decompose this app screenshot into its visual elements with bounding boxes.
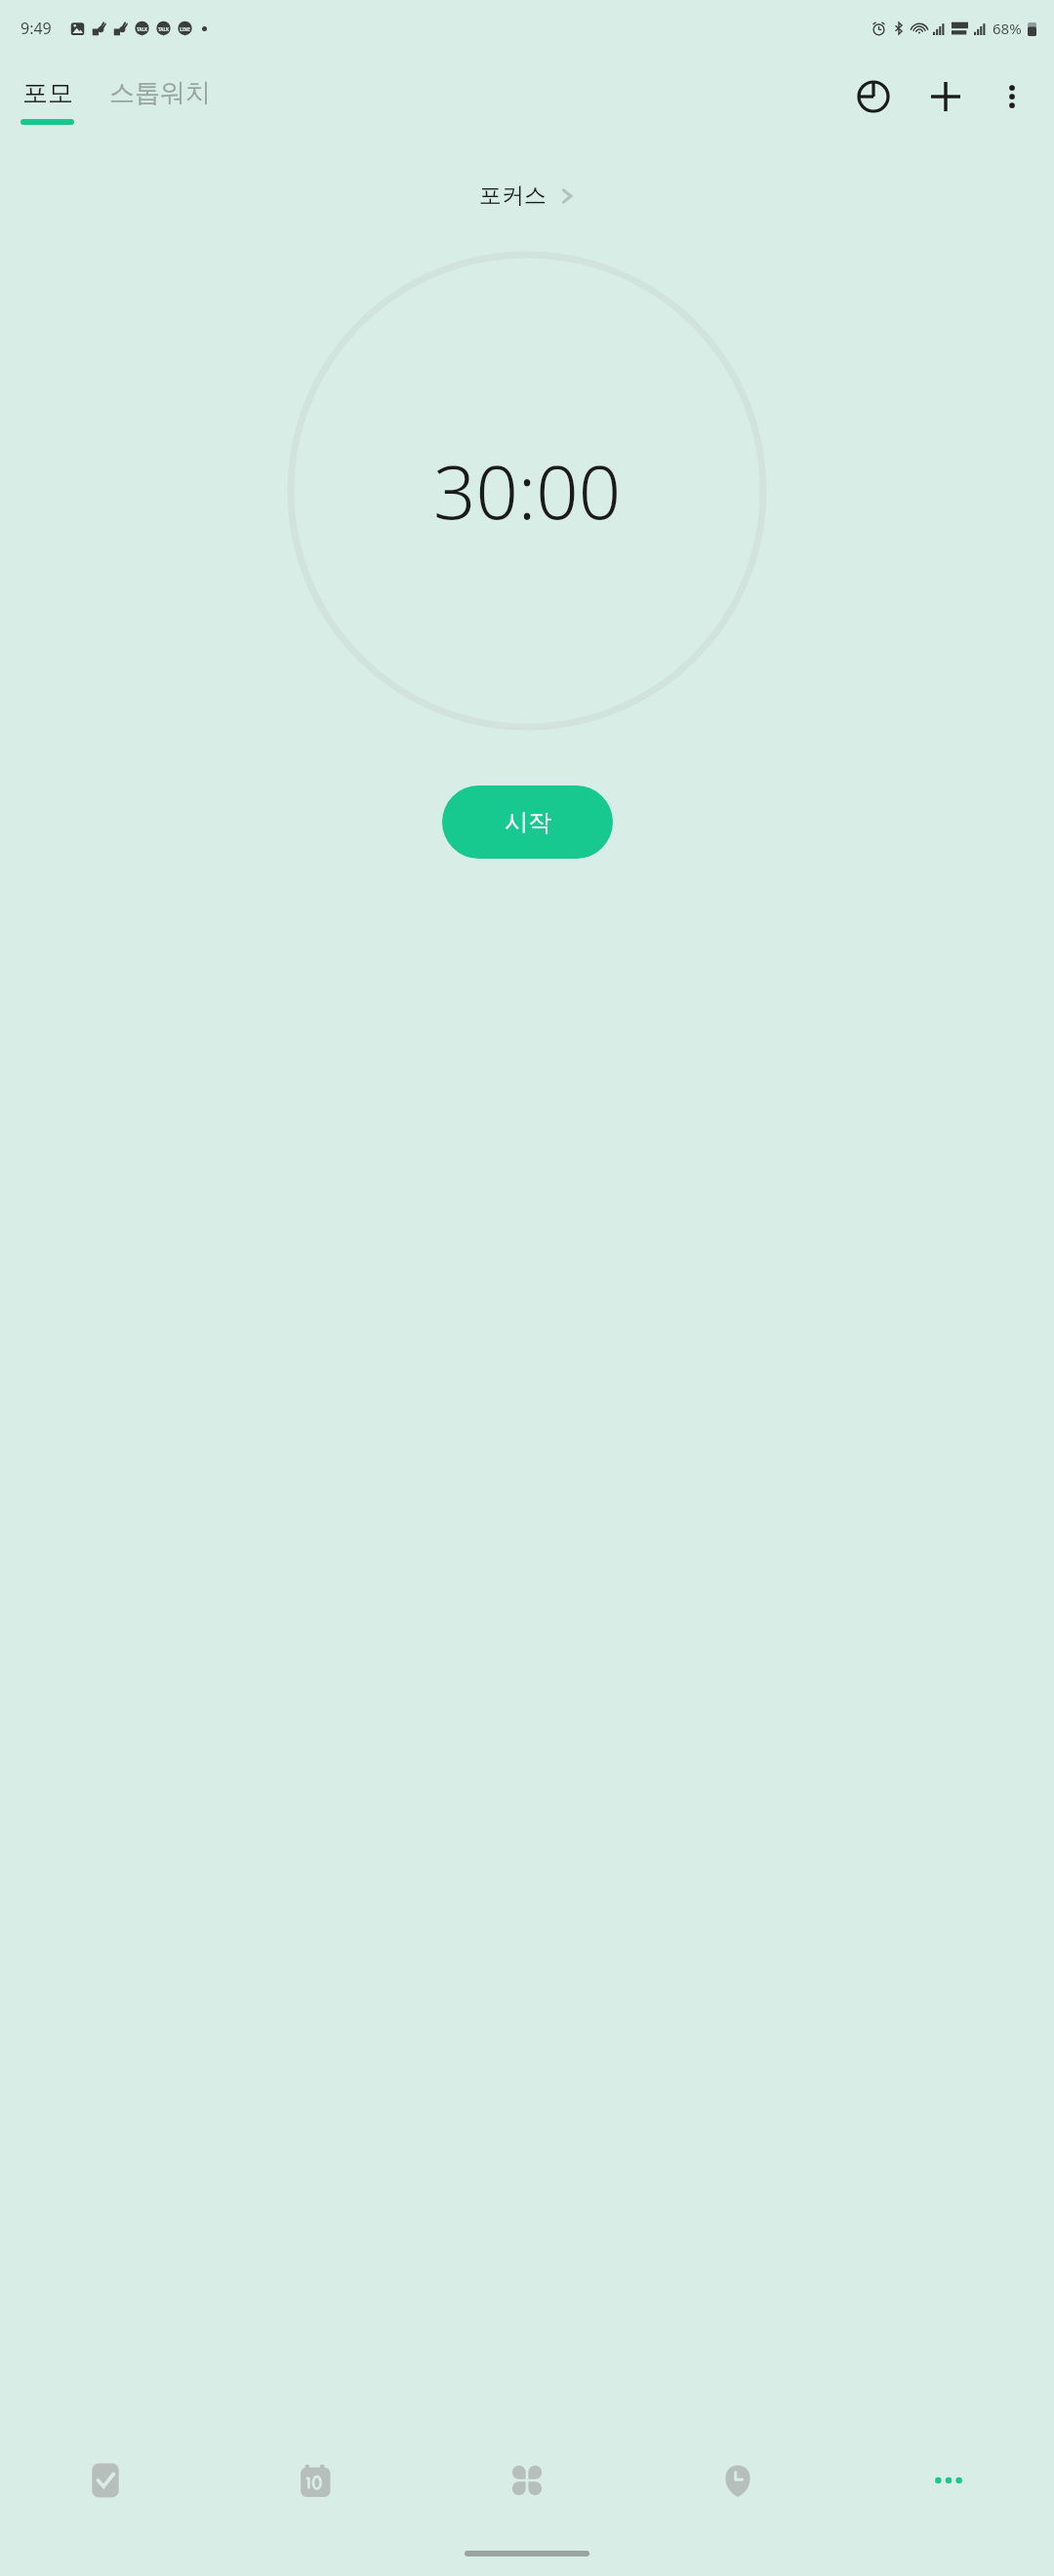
- button[interactable]: Add: [917, 68, 974, 125]
- staticText: TALK: [158, 26, 169, 32]
- button[interactable]: More: [843, 2430, 1054, 2531]
- button[interactable]: Statistics: [845, 68, 902, 125]
- staticText: 스톱워치: [109, 77, 211, 109]
- button[interactable]: Pomodoro: [632, 2430, 843, 2531]
- button[interactable]: Calendar: [211, 2430, 422, 2531]
- staticText: 30:00: [433, 440, 622, 542]
- button[interactable]: Habits: [422, 2430, 632, 2531]
- button[interactable]: 포모: [0, 77, 84, 125]
- staticText: 9:49: [20, 18, 52, 39]
- staticText: LINE: [180, 26, 190, 32]
- button[interactable]: 포커스: [464, 172, 591, 220]
- staticText: 포모: [22, 77, 73, 109]
- button[interactable]: Tasks: [0, 2430, 211, 2531]
- staticText: TALK: [137, 26, 147, 32]
- staticText: 시작: [505, 808, 551, 837]
- button[interactable]: 시작: [442, 785, 613, 859]
- button[interactable]: More options: [984, 68, 1040, 125]
- staticText: 포커스: [479, 181, 547, 210]
- button[interactable]: 스톱워치: [109, 77, 211, 125]
- staticText: 68%: [993, 19, 1022, 38]
